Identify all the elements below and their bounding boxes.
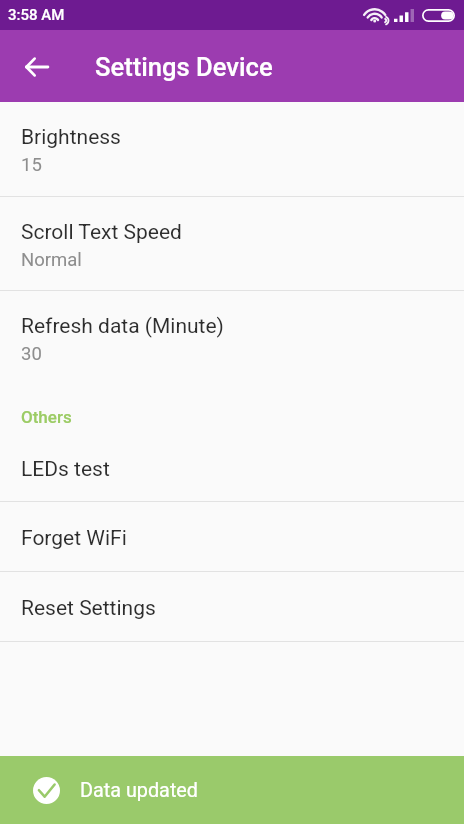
staticText: Others <box>21 407 72 427</box>
button[interactable]: Back <box>13 43 60 90</box>
button[interactable]: Refresh data (Minute) <box>0 291 464 385</box>
button[interactable]: Forget WiFi <box>0 502 464 571</box>
staticText: 3:58 AM <box>8 6 65 24</box>
button[interactable]: Brightness <box>0 102 464 196</box>
staticText: Scroll Text Speed <box>21 220 182 245</box>
staticText: 30 <box>21 343 42 365</box>
staticText: LEDs test <box>21 457 110 482</box>
staticText: Reset Settings <box>21 596 156 621</box>
staticText: Brightness <box>21 125 121 150</box>
staticText: Refresh data (Minute) <box>21 314 224 339</box>
staticText: 15 <box>21 154 42 176</box>
staticText: Forget WiFi <box>21 526 127 551</box>
staticText: Settings Device <box>95 52 273 82</box>
staticText: Normal <box>21 249 82 271</box>
button[interactable]: Scroll Text Speed <box>0 197 464 290</box>
staticText: Data updated <box>80 779 199 802</box>
button[interactable]: Reset Settings <box>0 572 464 641</box>
button[interactable]: LEDs test <box>0 433 464 501</box>
